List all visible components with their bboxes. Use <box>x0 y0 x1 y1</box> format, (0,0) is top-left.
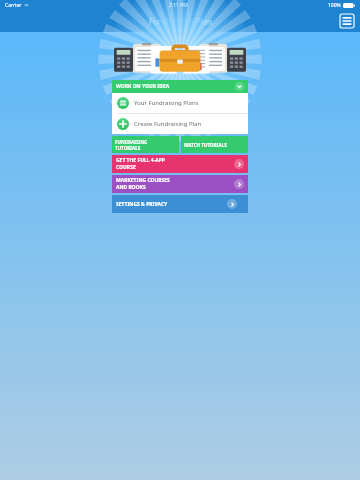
staticText: Fundraising Plan <box>149 16 212 27</box>
staticText: MARKETING COURSES AND BOOKS <box>116 177 175 191</box>
staticText: Your Fundraising Plans <box>134 99 199 107</box>
button[interactable]: GET THE FULL 4-APP COURSE <box>112 155 248 173</box>
button[interactable]: Create Fundraising Plan <box>112 114 248 134</box>
staticText: 2:11 PM <box>169 2 188 9</box>
staticText: 100% <box>328 2 341 9</box>
staticText: SETTINGS & PRIVACY <box>116 201 168 208</box>
staticText: FUNDRAISING TUTORIALS <box>115 139 148 151</box>
button[interactable]: SETTINGS & PRIVACY <box>112 195 248 213</box>
button[interactable]: Your Fundraising Plans <box>112 93 248 113</box>
staticText: WATCH TUTORIALS <box>184 142 227 148</box>
button[interactable]: WORK ON YOUR IDEA <box>112 80 248 93</box>
staticText: Create Fundraising Plan <box>134 120 202 128</box>
button[interactable]: MARKETING COURSES AND BOOKS <box>112 175 248 193</box>
staticText: WORK ON YOUR IDEA <box>116 83 170 90</box>
staticText: Carrier <box>5 2 22 9</box>
button[interactable]: FUNDRAISING TUTORIALS <box>112 136 179 153</box>
staticText: GET THE FULL 4-APP COURSE <box>116 157 175 171</box>
button[interactable]: Menu <box>339 13 355 29</box>
button[interactable]: WATCH TUTORIALS <box>181 136 248 153</box>
